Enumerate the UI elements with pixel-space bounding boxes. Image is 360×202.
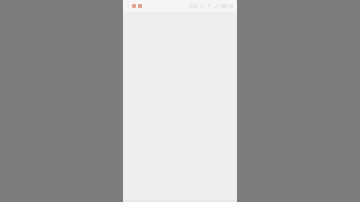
other: Mobile signal [214, 4, 219, 9]
other: Wi-Fi [207, 4, 212, 9]
other: Notification [138, 4, 142, 8]
staticText: 9:28 [189, 3, 198, 9]
other: Battery [221, 4, 228, 8]
staticText: 87 [229, 4, 234, 9]
other: Notification [132, 4, 136, 8]
staticText: ·ıl [126, 4, 130, 9]
other: Alarm [200, 4, 205, 9]
